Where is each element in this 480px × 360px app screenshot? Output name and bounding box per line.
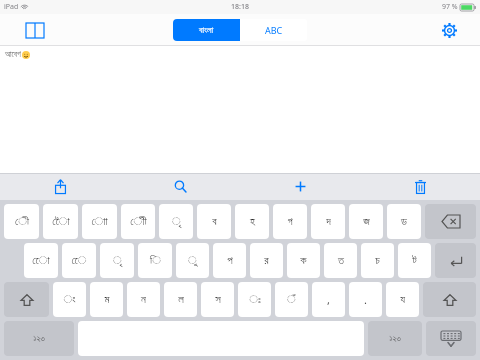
button[interactable]: প [213, 243, 246, 278]
staticText: ক [300, 255, 307, 266]
button[interactable]: ি [138, 243, 172, 278]
button[interactable]: Hide keyboard [426, 321, 476, 356]
staticText: ৃ [172, 216, 181, 227]
button[interactable]: ঃ [238, 282, 271, 317]
button[interactable]: ৃ [159, 204, 193, 239]
staticText: জ [363, 216, 370, 227]
staticText: ঁ [287, 294, 296, 305]
staticText: বাংলা [199, 26, 214, 35]
staticText: ABC [265, 24, 283, 36]
button[interactable]: েে [62, 243, 96, 278]
staticText: ১২৩ [33, 335, 45, 343]
button[interactable]: ড [387, 204, 421, 239]
staticText: গ [287, 216, 293, 227]
staticText: ং [63, 294, 76, 305]
button[interactable]: Add [240, 173, 360, 200]
staticText: ট [412, 255, 417, 266]
button[interactable]: েী [4, 204, 39, 239]
button[interactable]: ন [127, 282, 160, 317]
staticText: েী [15, 216, 29, 227]
button[interactable]: ১২৩ [4, 321, 74, 356]
staticText: চ [375, 255, 380, 266]
staticText: ৃ [113, 255, 122, 266]
button[interactable]: Library [22, 17, 48, 43]
button[interactable]: আবেগ [5, 51, 30, 59]
staticText: প [227, 255, 233, 266]
button[interactable]: েো [24, 243, 58, 278]
button[interactable]: ABC [240, 19, 307, 41]
button[interactable]: হ [235, 204, 269, 239]
staticText: 97 % [442, 2, 458, 12]
staticText: ত [338, 255, 344, 266]
staticText: , [327, 292, 330, 307]
button[interactable]: োা [82, 204, 117, 239]
button[interactable]: Return [435, 243, 476, 278]
button[interactable]: গ [273, 204, 307, 239]
staticText: দ [326, 216, 331, 227]
staticText: ১২৩ [389, 335, 401, 343]
staticText: স [215, 294, 221, 305]
staticText: ি [150, 255, 161, 266]
button[interactable]: ত [324, 243, 357, 278]
button[interactable]: চ [361, 243, 394, 278]
button[interactable]: দ [311, 204, 345, 239]
button[interactable]: ল [164, 282, 197, 317]
button[interactable]: জ [349, 204, 383, 239]
button[interactable]: , [312, 282, 345, 317]
button[interactable]: Search [120, 173, 240, 200]
button[interactable]: Shift [4, 282, 49, 317]
staticText: হ [250, 216, 255, 227]
button[interactable]: ু [176, 243, 209, 278]
button[interactable]: Share [0, 173, 120, 200]
button[interactable]: ৌী [121, 204, 155, 239]
button[interactable]: ৈো [43, 204, 78, 239]
button[interactable]: . [349, 282, 382, 317]
button[interactable]: Backspace [425, 204, 476, 239]
staticText: র [264, 255, 269, 266]
button[interactable]: ১২৩ [368, 321, 422, 356]
staticText: ড [401, 216, 407, 227]
staticText: ু [188, 255, 197, 266]
button[interactable]: ঁ [275, 282, 308, 317]
staticText: ৈো [52, 216, 70, 227]
button[interactable]: স [201, 282, 234, 317]
staticText: . [364, 292, 367, 307]
staticText: 18:18 [231, 2, 249, 12]
button[interactable]: ং [53, 282, 86, 317]
button[interactable]: য [386, 282, 419, 317]
button[interactable]: Settings [436, 17, 462, 43]
button[interactable]: ম [90, 282, 123, 317]
button[interactable]: ক [287, 243, 320, 278]
staticText: ঃ [249, 294, 261, 305]
staticText: ন [141, 294, 146, 305]
button[interactable]: ব [197, 204, 231, 239]
staticText: iPad [4, 2, 19, 12]
button[interactable]: ৃ [100, 243, 134, 278]
button[interactable]: ট [398, 243, 431, 278]
button[interactable]: Delete [360, 173, 480, 200]
staticText: েো [32, 255, 50, 266]
staticText: েে [71, 255, 87, 266]
button[interactable]: বাংলা [173, 19, 240, 41]
staticText: ম [104, 294, 110, 305]
staticText: য [400, 294, 405, 305]
button[interactable]: র [250, 243, 283, 278]
staticText: আবেগ [5, 51, 21, 59]
staticText: ব [212, 216, 217, 227]
button[interactable]: Shift [423, 282, 476, 317]
staticText: োা [91, 216, 108, 227]
staticText: ল [178, 294, 184, 305]
staticText: ৌী [130, 216, 147, 227]
